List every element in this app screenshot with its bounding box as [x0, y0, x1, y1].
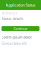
staticText: Lorem ipsum dolor	[1, 35, 31, 39]
staticText: Continue	[13, 26, 27, 31]
staticText: Application Status	[5, 2, 35, 8]
staticText: Reference	[1, 11, 17, 15]
staticText: Status details	[1, 16, 23, 21]
button[interactable]: Continue	[1, 26, 39, 31]
staticText: Consectetur elit	[1, 41, 26, 46]
